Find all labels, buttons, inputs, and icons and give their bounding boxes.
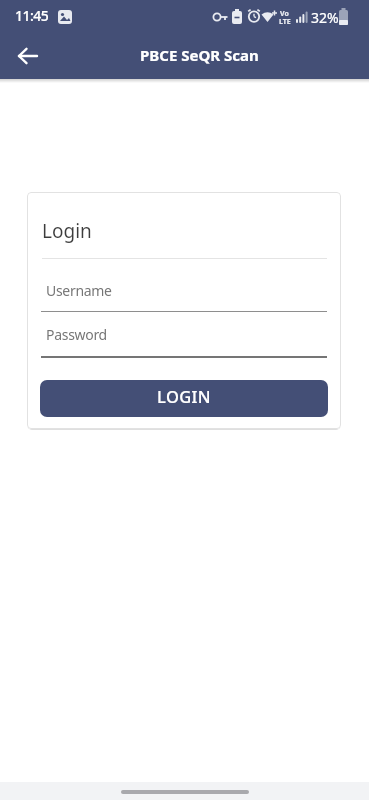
button[interactable]: Username	[41, 281, 327, 312]
staticText: PBCE SeQR Scan	[140, 45, 259, 65]
staticText: Password	[46, 325, 107, 344]
staticText: 32%	[311, 8, 339, 27]
staticText: Vo	[280, 9, 289, 19]
button[interactable]	[8, 36, 48, 76]
staticText: Username	[46, 281, 112, 300]
staticText: LOGIN	[157, 385, 212, 407]
button[interactable]: LOGIN	[40, 380, 328, 417]
staticText: 11:45	[15, 6, 49, 25]
staticText: Login	[42, 218, 92, 244]
staticText: LTE	[279, 17, 291, 27]
button[interactable]: Password	[41, 325, 327, 358]
